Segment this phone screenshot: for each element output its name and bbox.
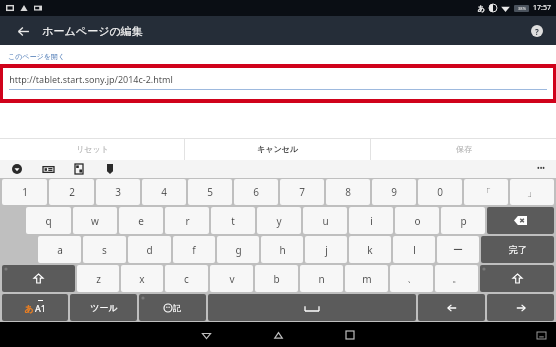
button[interactable]: k — [349, 236, 391, 263]
button[interactable]: キャンセル — [185, 138, 370, 160]
button[interactable]: 4 — [142, 179, 186, 205]
button[interactable]: 履歴 — [340, 325, 360, 345]
button[interactable]: 「 — [464, 179, 508, 205]
staticText: h — [279, 243, 286, 257]
staticText: b — [273, 272, 280, 286]
button[interactable]: q — [26, 207, 71, 234]
button[interactable]: 完了 — [481, 236, 554, 263]
staticText: x — [139, 272, 145, 286]
staticText: ホームページの編集 — [42, 24, 143, 38]
button[interactable]: v — [210, 265, 253, 292]
button[interactable]: シフト — [480, 265, 554, 292]
button[interactable]: あ — [2, 294, 68, 321]
staticText: m — [362, 272, 372, 286]
staticText: 7 — [299, 185, 305, 199]
button[interactable]: j — [305, 236, 347, 263]
button[interactable]: b — [255, 265, 298, 292]
staticText: d — [146, 243, 153, 257]
button[interactable]: c — [165, 265, 208, 292]
staticText: 」 — [527, 186, 537, 199]
staticText: 6 — [253, 185, 259, 199]
button[interactable]: i — [349, 207, 393, 234]
staticText: q — [45, 214, 52, 228]
button[interactable]: カード — [41, 162, 55, 176]
staticText: u — [322, 214, 329, 228]
staticText: このページを開く — [8, 52, 65, 61]
other: 削除 — [514, 216, 527, 225]
button[interactable]: 2 — [49, 179, 94, 205]
button[interactable]: w — [73, 207, 117, 234]
button[interactable]: 3 — [96, 179, 140, 205]
staticText: a — [57, 243, 63, 257]
button[interactable]: ホーム — [268, 325, 288, 345]
staticText: リセット — [76, 144, 109, 154]
button[interactable]: u — [303, 207, 347, 234]
button[interactable]: キーボード — [534, 328, 548, 342]
button[interactable]: h — [261, 236, 303, 263]
staticText: n — [318, 272, 325, 286]
staticText: 17:57 — [533, 3, 551, 13]
button[interactable]: a — [38, 236, 81, 263]
staticText: 4 — [161, 185, 167, 199]
staticText: t — [231, 214, 235, 228]
button[interactable]: z — [77, 265, 119, 292]
button[interactable]: e — [119, 207, 163, 234]
staticText: f — [192, 243, 196, 257]
button[interactable]: 1 — [2, 179, 47, 205]
button[interactable]: 左へ移動 — [418, 294, 485, 321]
staticText: 1 — [22, 185, 28, 199]
button[interactable]: o — [395, 207, 439, 234]
staticText: 0 — [437, 185, 443, 199]
button[interactable]: 右へ移動 — [487, 294, 554, 321]
staticText: 2 — [69, 185, 75, 199]
button[interactable]: y — [257, 207, 301, 234]
staticText: ? — [535, 26, 539, 37]
button[interactable]: 6 — [234, 179, 278, 205]
button[interactable]: 」 — [510, 179, 554, 205]
staticText: 9 — [391, 185, 397, 199]
button[interactable]: n — [300, 265, 343, 292]
button[interactable]: 5 — [188, 179, 232, 205]
staticText: o — [414, 214, 421, 228]
button[interactable]: s — [83, 236, 126, 263]
button[interactable]: 、 — [390, 265, 433, 292]
staticText: 完了 — [509, 244, 527, 255]
staticText: r — [185, 214, 190, 228]
button[interactable]: p — [441, 207, 485, 234]
button[interactable]: 9 — [372, 179, 416, 205]
button[interactable]: その他 — [534, 162, 548, 176]
button[interactable]: ツール — [70, 294, 137, 321]
button[interactable]: 7 — [280, 179, 324, 205]
staticText: ツール — [90, 302, 118, 313]
button[interactable]: リセット — [0, 138, 184, 160]
button[interactable]: f — [173, 236, 215, 263]
button[interactable]: 保存 — [10, 162, 24, 176]
button[interactable]: t — [211, 207, 255, 234]
button[interactable]: 0 — [418, 179, 462, 205]
button[interactable]: 保存 — [371, 138, 556, 160]
button[interactable]: コード — [72, 162, 86, 176]
button[interactable]: 記 — [139, 294, 206, 321]
button[interactable]: x — [121, 265, 163, 292]
button[interactable]: d — [128, 236, 171, 263]
staticText: e — [138, 214, 144, 228]
button[interactable]: g — [217, 236, 259, 263]
button[interactable]: 戻る — [196, 325, 216, 345]
button[interactable]: 定型文 — [103, 162, 117, 176]
button[interactable]: シフト — [2, 265, 75, 292]
button[interactable]: l — [393, 236, 435, 263]
button[interactable]: ー — [437, 236, 479, 263]
button[interactable]: r — [165, 207, 209, 234]
staticText: s — [102, 243, 107, 257]
button[interactable]: 戻る — [12, 20, 34, 42]
staticText: l — [413, 243, 416, 257]
button[interactable]: m — [345, 265, 388, 292]
staticText: y — [276, 214, 282, 228]
button[interactable]: 8 — [326, 179, 370, 205]
button[interactable]: 削除 — [487, 207, 554, 234]
button[interactable]: スペース — [208, 294, 416, 321]
button[interactable]: 。 — [435, 265, 478, 292]
staticText: 5 — [207, 185, 213, 199]
button[interactable]: ヘルプ — [527, 21, 547, 41]
staticText: 3 — [115, 185, 121, 199]
